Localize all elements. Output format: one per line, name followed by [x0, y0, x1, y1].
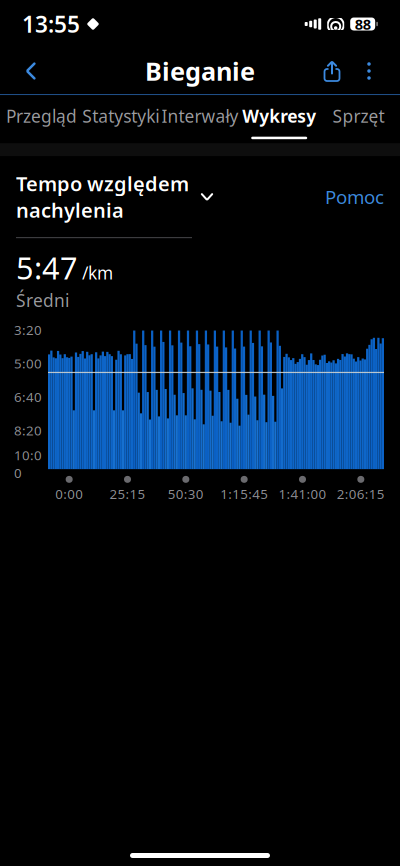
button[interactable]: Przegląd	[2, 95, 81, 143]
staticText: 25:15	[109, 485, 145, 503]
staticText: 2:06:15	[337, 485, 385, 503]
staticText: 1:41:00	[278, 485, 326, 503]
staticText: 0:00	[55, 485, 83, 503]
staticText: Tempo względem nachylenia	[16, 170, 189, 223]
staticText: 8:20	[14, 421, 42, 439]
staticText: /km	[82, 261, 113, 284]
staticText: 50:30	[168, 485, 204, 503]
button[interactable]: Statystyki	[81, 95, 160, 143]
button[interactable]: Share	[312, 51, 352, 91]
staticText: 1:15:45	[220, 485, 268, 503]
staticText: Statystyki	[82, 104, 159, 127]
staticText: 5:00	[14, 354, 42, 372]
button[interactable]: Wykresy	[240, 95, 319, 143]
staticText: Pomoc	[325, 184, 384, 209]
staticText: 5:47	[16, 247, 78, 288]
staticText: Interwały	[161, 104, 238, 127]
staticText: Sprzęt	[332, 104, 384, 127]
staticText: Średni	[16, 289, 69, 312]
staticText: 13:55	[22, 9, 80, 39]
staticText: 3:20	[14, 321, 42, 339]
button[interactable]: Back	[14, 51, 48, 91]
button[interactable]: Sprzęt	[319, 95, 398, 143]
staticText: Wykresy	[242, 104, 316, 127]
staticText: Bieganie	[145, 54, 255, 88]
button[interactable]: Interwały	[160, 95, 240, 143]
staticText: 88	[355, 14, 371, 34]
button[interactable]: More options	[352, 51, 386, 91]
staticText: 6:40	[14, 388, 42, 406]
button[interactable]: Pomoc	[315, 180, 384, 213]
staticText: Przegląd	[6, 104, 77, 127]
button[interactable]: Tempo względem nachylenia	[16, 170, 215, 223]
staticText: 10:00	[14, 446, 42, 482]
